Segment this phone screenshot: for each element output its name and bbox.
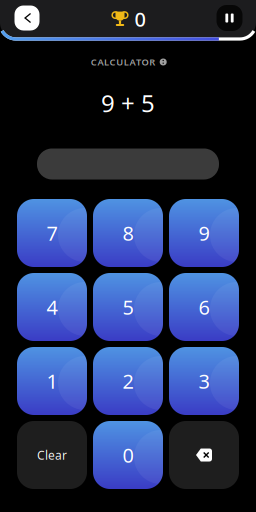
staticText: 9: [198, 220, 209, 246]
staticText: 5: [122, 294, 133, 320]
staticText: 4: [46, 294, 57, 320]
staticText: 8: [122, 220, 133, 246]
button[interactable]: 0: [93, 421, 163, 489]
button[interactable]: 8: [93, 199, 163, 267]
staticText: 9 + 5: [101, 87, 155, 119]
button[interactable]: Pause: [214, 2, 245, 33]
button[interactable]: Clear: [17, 421, 87, 489]
button[interactable]: 2: [93, 347, 163, 415]
button[interactable]: 1: [17, 347, 87, 415]
button[interactable]: 7: [17, 199, 87, 267]
staticText: 2: [122, 368, 133, 394]
staticText: Clear: [37, 447, 67, 463]
staticText: 1: [46, 368, 57, 394]
button[interactable]: 5: [93, 273, 163, 341]
staticText: 7: [46, 220, 57, 246]
button[interactable]: 4: [17, 273, 87, 341]
button[interactable]: Delete: [169, 421, 239, 489]
button[interactable]: 9: [169, 199, 239, 267]
button[interactable]: Back: [11, 2, 42, 33]
staticText: 6: [198, 294, 209, 320]
staticText: 0: [122, 442, 133, 468]
button[interactable]: 3: [169, 347, 239, 415]
staticText: 0: [134, 6, 145, 32]
staticText: CALCULATOR: [91, 56, 155, 68]
staticText: 3: [198, 368, 209, 394]
button[interactable]: 6: [169, 273, 239, 341]
